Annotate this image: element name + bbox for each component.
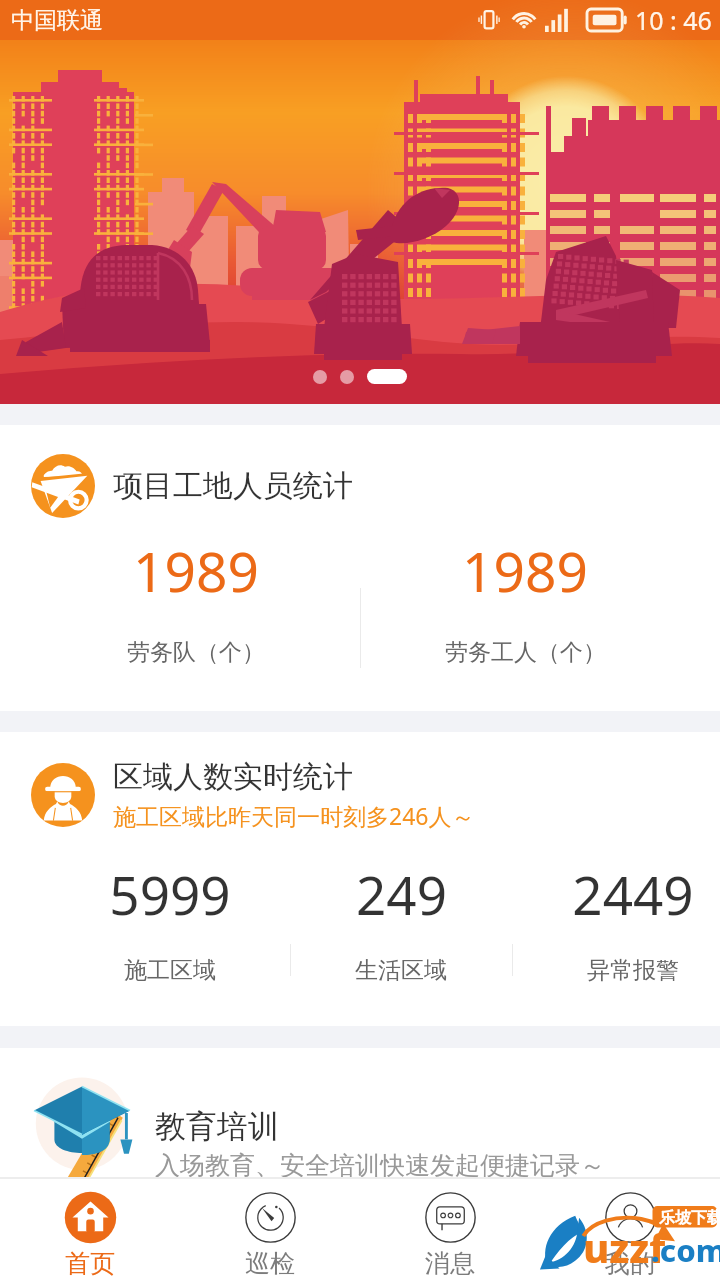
staticText: 10 : 46 xyxy=(635,3,712,37)
staticText: 施工区域比昨天同一时刻多246人～ xyxy=(113,800,475,831)
staticText: 教育培训 xyxy=(155,1107,279,1146)
button[interactable]: 我的 xyxy=(540,1179,720,1280)
staticText: 5999 xyxy=(109,858,231,930)
staticText: 巡检 xyxy=(245,1248,295,1279)
staticText: 劳务工人（个） xyxy=(445,638,606,667)
staticText: 中国联通 xyxy=(11,6,103,35)
staticText: 消息 xyxy=(425,1248,475,1279)
button[interactable]: 教育培训 xyxy=(0,1048,720,1177)
staticText: uzzf xyxy=(583,1220,666,1274)
staticText: 首页 xyxy=(65,1248,115,1279)
button[interactable]: 消息 xyxy=(360,1179,540,1280)
staticText: 施工区域 xyxy=(124,956,216,985)
staticText: 异常报警 xyxy=(587,956,679,985)
staticText: 项目工地人员统计 xyxy=(113,467,353,505)
staticText: 2449 xyxy=(572,858,694,930)
staticText: 我的 xyxy=(605,1248,655,1279)
staticText: 劳务队（个） xyxy=(127,638,265,667)
staticText: 1989 xyxy=(133,533,259,608)
staticText: 乐坡下载 xyxy=(659,1208,720,1228)
button[interactable]: 首页 xyxy=(0,1179,180,1280)
button[interactable]: 巡检 xyxy=(180,1179,360,1280)
staticText: 区域人数实时统计 xyxy=(113,758,353,796)
staticText: .com xyxy=(651,1229,720,1271)
staticText: 入场教育、安全培训快速发起便捷记录～ xyxy=(155,1150,605,1181)
staticText: 249 xyxy=(356,858,447,930)
staticText: 生活区域 xyxy=(355,956,447,985)
staticText: 1989 xyxy=(462,533,588,608)
